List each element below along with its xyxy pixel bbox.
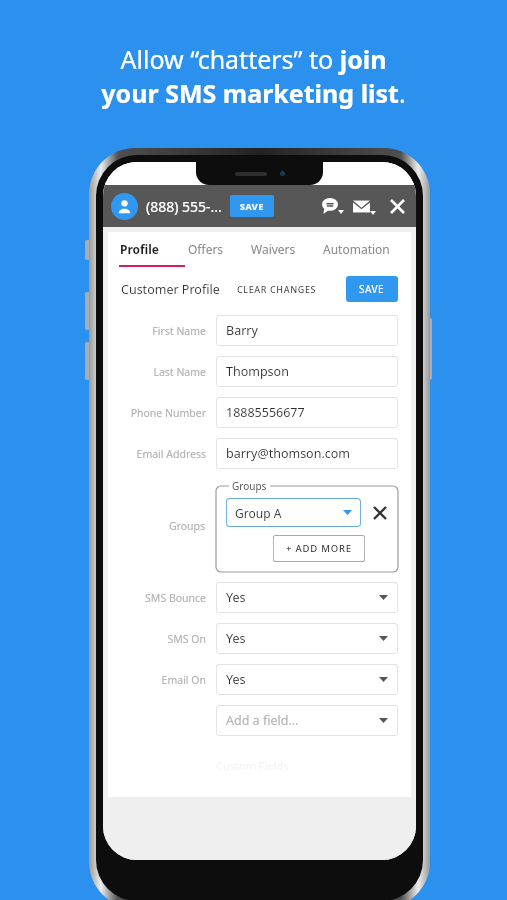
staticText: barry@thomson.com — [226, 445, 351, 462]
staticText: Barry — [226, 322, 258, 339]
staticText: 18885556677 — [226, 404, 305, 421]
staticText: Customer Profile — [121, 281, 220, 298]
button[interactable]: Automation — [323, 236, 390, 262]
staticText: Yes — [226, 589, 246, 606]
button[interactable]: Group A — [226, 498, 361, 527]
button[interactable]: Thompson — [216, 356, 398, 387]
staticText: + ADD MORE — [286, 542, 352, 555]
button[interactable]: Send SMS — [321, 198, 345, 214]
button[interactable]: Barry — [216, 315, 398, 346]
staticText: SMS Bounce — [145, 591, 206, 605]
button[interactable]: CLEAR CHANGES — [234, 280, 320, 298]
staticText: Add a field... — [226, 712, 299, 729]
button[interactable]: Contact — [111, 193, 138, 220]
button[interactable]: SAVE — [346, 276, 398, 302]
staticText: SMS On — [167, 632, 206, 646]
staticText: Custom Fields — [216, 758, 289, 773]
staticText: Allow “chatters” to join your SMS market… — [101, 42, 406, 111]
staticText: Email Address — [136, 447, 206, 461]
button[interactable]: Yes — [216, 664, 398, 695]
staticText: Groups — [169, 519, 206, 533]
button[interactable]: Add a field... — [216, 705, 398, 736]
staticText: Phone Number — [130, 406, 206, 420]
button[interactable]: SAVE — [230, 195, 274, 217]
staticText: (888) 555-... — [146, 197, 222, 216]
button[interactable]: Send email — [352, 198, 377, 215]
staticText: Email On — [161, 673, 206, 687]
button[interactable]: Waivers — [251, 236, 296, 262]
button[interactable]: barry@thomson.com — [216, 438, 398, 469]
button[interactable]: 18885556677 — [216, 397, 398, 428]
button[interactable]: Close — [386, 195, 408, 217]
button[interactable]: Yes — [216, 582, 398, 613]
staticText: Yes — [226, 671, 246, 688]
staticText: SAVE — [359, 282, 385, 296]
staticText: CLEAR CHANGES — [237, 283, 317, 295]
staticText: Groups — [232, 479, 267, 493]
staticText: Waivers — [251, 241, 296, 257]
button[interactable]: Offers — [188, 236, 224, 262]
staticText: Last Name — [153, 365, 206, 379]
staticText: First Name — [152, 324, 206, 338]
staticText: Offers — [188, 241, 224, 257]
staticText: SAVE — [240, 200, 264, 212]
staticText: Group A — [235, 505, 282, 521]
staticText: Automation — [323, 241, 390, 257]
staticText: Thompson — [226, 363, 289, 380]
staticText: Yes — [226, 630, 246, 647]
button[interactable]: Remove group — [370, 503, 390, 523]
button[interactable]: + ADD MORE — [273, 535, 365, 562]
button[interactable]: Profile — [120, 236, 160, 262]
button[interactable]: Yes — [216, 623, 398, 654]
staticText: Profile — [120, 241, 160, 257]
